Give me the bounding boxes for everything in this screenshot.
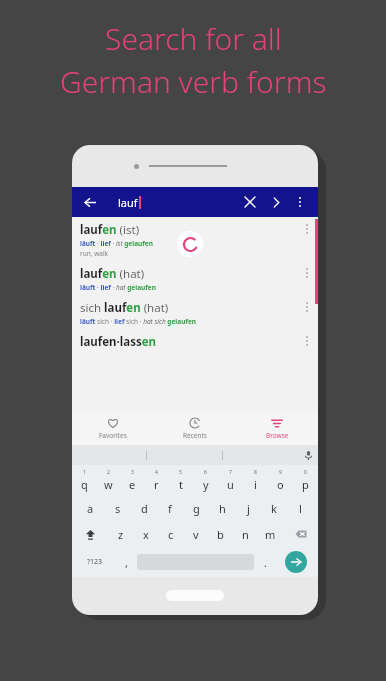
- staticText: r: [154, 477, 159, 492]
- button[interactable]: Row menu: [300, 334, 314, 348]
- button[interactable]: laufen (ist): [72, 217, 318, 261]
- button[interactable]: x: [133, 521, 158, 547]
- button[interactable]: Back: [80, 192, 100, 212]
- staticText: o: [277, 477, 284, 492]
- button[interactable]: 3: [120, 465, 144, 495]
- staticText: u: [227, 477, 234, 492]
- button[interactable]: .: [254, 549, 276, 575]
- staticText: .: [264, 555, 267, 570]
- button[interactable]: 6: [193, 465, 218, 495]
- button[interactable]: 8: [243, 465, 268, 495]
- button[interactable]: j: [235, 495, 261, 521]
- staticText: Favorites: [99, 431, 127, 440]
- button[interactable]: c: [158, 521, 183, 547]
- staticText: 8: [254, 469, 257, 476]
- staticText: Search for all: [105, 18, 282, 59]
- button[interactable]: Shift: [72, 521, 108, 547]
- staticText: w: [104, 477, 113, 492]
- staticText: run, walk: [80, 249, 109, 258]
- button[interactable]: k: [261, 495, 287, 521]
- staticText: Recents: [183, 431, 207, 440]
- button[interactable]: f: [157, 495, 183, 521]
- button[interactable]: Clear: [240, 192, 260, 212]
- button[interactable]: Backspace: [283, 521, 318, 547]
- button[interactable]: laufen·lassen: [72, 329, 318, 353]
- staticText: a: [87, 501, 94, 516]
- button[interactable]: g: [183, 495, 209, 521]
- staticText: 4: [155, 469, 158, 476]
- staticText: 9: [279, 469, 282, 476]
- staticText: laufen (hat): [80, 266, 145, 282]
- staticText: 7: [229, 469, 232, 476]
- button[interactable]: sich laufen (hat): [72, 295, 318, 329]
- button[interactable]: 7: [218, 465, 243, 495]
- button[interactable]: laufen (hat): [72, 261, 318, 295]
- staticText: f: [168, 501, 172, 516]
- staticText: laufen·lassen: [80, 334, 157, 350]
- button[interactable]: 1: [72, 465, 96, 495]
- staticText: 2: [107, 469, 110, 476]
- button[interactable]: z: [108, 521, 133, 547]
- button[interactable]: 5: [168, 465, 193, 495]
- button[interactable]: 2: [96, 465, 120, 495]
- button[interactable]: Voice input: [298, 445, 318, 465]
- staticText: m: [265, 527, 276, 542]
- staticText: German verb forms: [60, 61, 327, 102]
- staticText: ?123: [87, 557, 103, 567]
- staticText: z: [118, 527, 124, 542]
- button[interactable]: 0: [293, 465, 318, 495]
- staticText: c: [168, 527, 174, 542]
- staticText: 6: [204, 469, 207, 476]
- button[interactable]: Next: [266, 192, 286, 212]
- staticText: p: [302, 477, 309, 492]
- staticText: Browse: [266, 431, 289, 440]
- staticText: j: [247, 501, 250, 516]
- button[interactable]: n: [233, 521, 258, 547]
- button[interactable]: Recents: [154, 411, 236, 445]
- button[interactable]: a: [77, 495, 104, 521]
- staticText: laufen (ist): [80, 222, 140, 238]
- staticText: n: [242, 527, 249, 542]
- button[interactable]: v: [183, 521, 208, 547]
- staticText: b: [217, 527, 224, 542]
- button[interactable]: Row menu: [300, 222, 314, 236]
- staticText: 1: [83, 469, 86, 476]
- button[interactable]: Enter: [285, 551, 307, 573]
- button[interactable]: Row menu: [300, 266, 314, 280]
- staticText: 3: [131, 469, 134, 476]
- staticText: k: [271, 501, 277, 516]
- staticText: x: [143, 527, 149, 542]
- staticText: g: [193, 501, 200, 516]
- staticText: sich laufen (hat): [80, 300, 169, 316]
- button[interactable]: ?123: [75, 549, 115, 575]
- staticText: h: [219, 501, 226, 516]
- button[interactable]: l: [287, 495, 313, 521]
- button[interactable]: s: [104, 495, 131, 521]
- staticText: läuft · lief · ist gelaufen: [80, 239, 153, 248]
- staticText: v: [193, 527, 199, 542]
- button[interactable]: Favorites: [72, 411, 154, 445]
- staticText: s: [115, 501, 121, 516]
- staticText: y: [203, 477, 209, 492]
- button[interactable]: m: [258, 521, 283, 547]
- staticText: t: [179, 477, 183, 492]
- button[interactable]: Row menu: [300, 300, 314, 314]
- staticText: q: [81, 477, 88, 492]
- button[interactable]: h: [209, 495, 235, 521]
- button[interactable]: d: [131, 495, 157, 521]
- button[interactable]: 4: [144, 465, 168, 495]
- button[interactable]: b: [208, 521, 233, 547]
- button[interactable]: Browse: [236, 411, 318, 445]
- staticText: l: [299, 501, 302, 516]
- staticText: d: [141, 501, 148, 516]
- button[interactable]: 9: [268, 465, 293, 495]
- button[interactable]: More options: [290, 192, 310, 212]
- staticText: i: [254, 477, 257, 492]
- staticText: läuft sich · lief sich · hat sich gelauf…: [80, 317, 196, 326]
- staticText: 5: [179, 469, 182, 476]
- staticText: lauf: [118, 195, 138, 210]
- staticText: läuft · lief · hat gelaufen: [80, 283, 156, 292]
- staticText: 0: [304, 469, 307, 476]
- button[interactable]: ,: [115, 549, 137, 575]
